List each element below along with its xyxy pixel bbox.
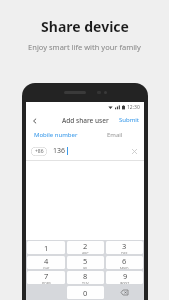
staticText: 7 (44, 271, 49, 281)
staticText: 1 (44, 243, 49, 253)
staticText: Add share user (62, 116, 109, 125)
button[interactable]: Clear (130, 147, 139, 156)
staticText: DEF (121, 251, 128, 254)
staticText: PQRS (42, 281, 51, 284)
button[interactable]: Mobile number (26, 128, 85, 142)
button[interactable]: 7 (27, 271, 65, 284)
staticText: Email (107, 131, 123, 139)
button[interactable]: Email (85, 128, 144, 142)
button[interactable]: 9 (106, 271, 143, 284)
staticText: 9 (123, 271, 128, 281)
button[interactable]: 0 (67, 286, 104, 299)
staticText: 8 (83, 271, 88, 281)
staticText: 136 (53, 146, 66, 156)
staticText: ABC (82, 251, 89, 254)
button[interactable]: 4 (27, 256, 65, 269)
staticText: 6 (122, 256, 127, 266)
button[interactable]: 2 (67, 241, 104, 254)
staticText: TUV (82, 281, 89, 284)
staticText: Share device (41, 17, 129, 36)
button[interactable]: Back (29, 115, 40, 126)
staticText: 4 (44, 256, 49, 266)
staticText: Submit (119, 116, 140, 124)
staticText: JKL (83, 266, 88, 269)
staticText: Enjoy smart life with your family (28, 42, 141, 52)
button[interactable]: 5 (67, 256, 104, 269)
staticText: GHI (43, 266, 50, 269)
staticText: MNO (120, 266, 129, 269)
button[interactable]: 8 (67, 271, 104, 284)
button[interactable]: 3 (106, 241, 143, 254)
staticText: WXYZ (120, 281, 130, 284)
staticText: 3 (122, 241, 127, 251)
staticText: 2 (83, 241, 88, 251)
staticText: 5 (83, 256, 88, 266)
staticText: Mobile number (34, 131, 78, 139)
button[interactable]: +86 (31, 147, 47, 156)
button[interactable]: 6 (106, 256, 143, 269)
button[interactable]: Backspace (106, 286, 143, 299)
staticText: 12:30 (127, 104, 140, 111)
button[interactable]: Submit (115, 113, 144, 127)
button[interactable]: 1 (27, 241, 65, 254)
staticText: +86 (35, 148, 44, 155)
staticText: 0 (83, 288, 88, 298)
